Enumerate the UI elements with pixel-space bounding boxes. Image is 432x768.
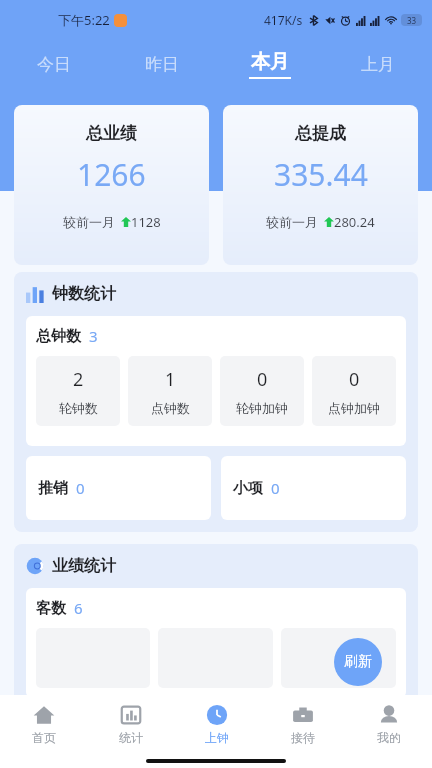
staticText: 6 [74, 598, 83, 618]
staticText: 总提成 [295, 123, 346, 144]
staticText: 上月 [361, 54, 395, 75]
staticText: 较前一月 [63, 214, 115, 230]
button[interactable]: 上钟 [174, 695, 260, 753]
staticText: 钟数统计 [52, 284, 116, 304]
button[interactable]: 总提成 [223, 105, 418, 265]
staticText: 1266 [77, 154, 146, 195]
button[interactable]: 本月 [216, 40, 324, 88]
staticText: 小项 [233, 479, 263, 498]
staticText: 业绩统计 [52, 556, 116, 576]
button[interactable]: 刷新 [334, 638, 382, 686]
staticText: 今日 [37, 54, 71, 75]
button[interactable]: 昨日 [108, 40, 216, 88]
staticText: 首页 [32, 730, 56, 745]
button[interactable]: 上月 [324, 40, 432, 88]
staticText: 3 [89, 326, 98, 346]
button[interactable]: 我的 [346, 695, 432, 753]
staticText: 本月 [251, 50, 289, 74]
button[interactable]: 推销 [26, 456, 211, 520]
staticText: 0 [257, 367, 268, 392]
staticText: 33 [407, 15, 417, 26]
staticText: 1 [165, 367, 176, 392]
staticText: 昨日 [145, 54, 179, 75]
staticText: 刷新 [344, 653, 372, 671]
button[interactable]: 0 [220, 356, 304, 426]
button[interactable]: 2 [36, 356, 120, 426]
staticText: 0 [349, 367, 360, 392]
button[interactable]: 统计 [87, 695, 174, 753]
staticText: 推销 [38, 479, 68, 498]
staticText: 0 [271, 478, 280, 498]
staticText: 280.24 [334, 213, 375, 231]
staticText: 0 [76, 478, 85, 498]
staticText: 总钟数 [36, 327, 81, 346]
button[interactable]: 首页 [0, 695, 87, 753]
button[interactable] [281, 628, 396, 688]
button[interactable]: 今日 [0, 40, 108, 88]
staticText: 较前一月 [266, 214, 318, 230]
staticText: 我的 [377, 730, 401, 745]
staticText: 接待 [291, 730, 315, 745]
staticText: 点钟数 [151, 400, 190, 416]
staticText: 客数 [36, 599, 66, 618]
staticText: 轮钟数 [59, 400, 98, 416]
button[interactable]: 0 [312, 356, 396, 426]
staticText: 统计 [119, 730, 143, 745]
button[interactable]: 接待 [260, 695, 346, 753]
staticText: 总业绩 [86, 123, 137, 144]
staticText: 1128 [131, 213, 161, 231]
staticText: 点钟加钟 [328, 400, 380, 416]
staticText: 417K/s [264, 12, 303, 28]
staticText: 335.44 [274, 154, 368, 195]
staticText: 下午5:22 [58, 11, 110, 29]
staticText: 2 [73, 367, 84, 392]
button[interactable]: 小项 [221, 456, 406, 520]
staticText: 轮钟加钟 [236, 400, 288, 416]
button[interactable]: 总业绩 [14, 105, 209, 265]
staticText: 上钟 [205, 730, 229, 745]
button[interactable]: 1 [128, 356, 212, 426]
